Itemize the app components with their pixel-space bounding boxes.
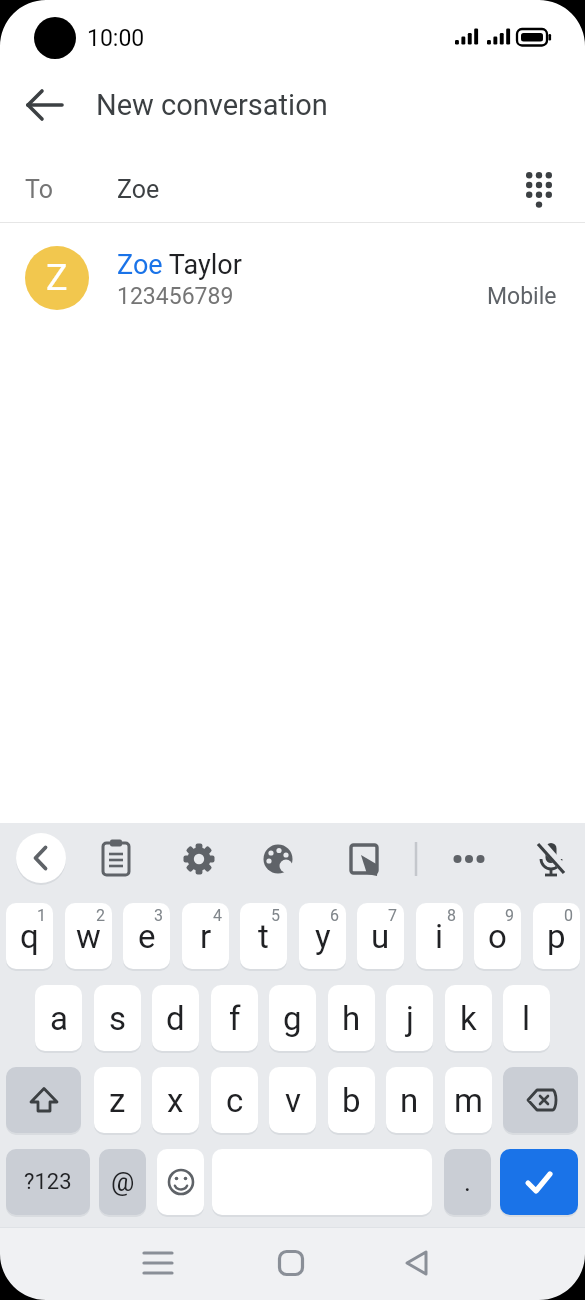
staticText: p xyxy=(547,917,566,956)
button[interactable]: Z xyxy=(0,233,585,323)
staticText: i xyxy=(435,917,444,956)
button[interactable] xyxy=(267,1234,315,1282)
button[interactable]: j xyxy=(386,985,433,1051)
staticText: g xyxy=(283,999,302,1038)
staticText: j xyxy=(406,999,414,1038)
staticText: 4 xyxy=(213,906,222,925)
button[interactable] xyxy=(157,1149,204,1215)
button[interactable] xyxy=(531,839,571,879)
staticText: 1 xyxy=(37,906,46,925)
staticText: t xyxy=(258,917,269,956)
button[interactable]: g xyxy=(269,985,316,1051)
button[interactable] xyxy=(96,839,136,879)
staticText: New conversation xyxy=(96,88,328,122)
staticText: z xyxy=(109,1081,126,1120)
staticText: l xyxy=(522,999,531,1038)
staticText: 7 xyxy=(388,906,397,925)
button[interactable]: l xyxy=(503,985,550,1051)
button[interactable]: o xyxy=(474,903,521,969)
staticText: o xyxy=(488,917,507,956)
staticText: 9 xyxy=(505,906,514,925)
staticText: h xyxy=(342,999,361,1038)
button[interactable]: u xyxy=(357,903,404,969)
staticText: 10:00 xyxy=(87,25,145,52)
button[interactable] xyxy=(500,1149,578,1215)
staticText: f xyxy=(229,999,241,1038)
button[interactable]: c xyxy=(211,1067,258,1133)
staticText: Zoe xyxy=(117,175,160,204)
staticText: 6 xyxy=(330,906,339,925)
staticText: x xyxy=(167,1081,184,1120)
button[interactable] xyxy=(449,839,489,879)
button[interactable]: n xyxy=(386,1067,433,1133)
staticText: 123456789 xyxy=(117,283,234,310)
staticText: y xyxy=(315,917,331,956)
staticText: 5 xyxy=(271,906,280,925)
staticText: To xyxy=(25,175,53,204)
staticText: 8 xyxy=(447,906,456,925)
staticText: n xyxy=(400,1081,419,1120)
staticText: c xyxy=(226,1081,244,1120)
button[interactable]: p xyxy=(533,903,580,969)
button[interactable]: a xyxy=(35,985,82,1051)
button[interactable]: t xyxy=(240,903,287,969)
button[interactable] xyxy=(16,833,66,883)
button[interactable]: k xyxy=(445,985,492,1051)
button[interactable] xyxy=(396,1234,444,1282)
button[interactable]: ?123 xyxy=(6,1149,90,1215)
button[interactable]: d xyxy=(152,985,199,1051)
button[interactable]: b xyxy=(328,1067,375,1133)
staticText: q xyxy=(20,917,39,956)
staticText: w xyxy=(76,917,101,956)
staticText: 0 xyxy=(564,906,573,925)
button[interactable]: r xyxy=(182,903,229,969)
staticText: 2 xyxy=(96,906,105,925)
button[interactable] xyxy=(22,81,70,129)
staticText: 3 xyxy=(154,906,163,925)
staticText: . xyxy=(464,1167,471,1197)
staticText: e xyxy=(138,917,156,956)
button[interactable]: h xyxy=(328,985,375,1051)
button[interactable] xyxy=(258,839,298,879)
staticText: r xyxy=(200,917,212,956)
button[interactable]: To xyxy=(0,155,585,223)
staticText: Mobile xyxy=(487,283,557,310)
staticText: a xyxy=(50,999,68,1038)
button[interactable]: f xyxy=(211,985,258,1051)
button[interactable]: s xyxy=(94,985,141,1051)
button[interactable]: m xyxy=(445,1067,492,1133)
button[interactable]: . xyxy=(444,1149,491,1215)
button[interactable]: x xyxy=(152,1067,199,1133)
button[interactable] xyxy=(345,839,385,879)
button[interactable]: y xyxy=(299,903,346,969)
staticText: s xyxy=(109,999,127,1038)
button[interactable]: w xyxy=(65,903,112,969)
button[interactable]: @ xyxy=(99,1149,146,1215)
button[interactable] xyxy=(515,161,563,209)
button[interactable] xyxy=(131,1234,179,1282)
staticText: ?123 xyxy=(24,1169,72,1195)
button[interactable]: e xyxy=(123,903,170,969)
button[interactable] xyxy=(6,1067,81,1133)
button[interactable]: q xyxy=(6,903,53,969)
staticText: m xyxy=(454,1081,483,1120)
staticText: Z xyxy=(46,257,68,299)
staticText: k xyxy=(460,999,477,1038)
button[interactable]: z xyxy=(94,1067,141,1133)
staticText: Zoe Taylor xyxy=(117,249,242,281)
button[interactable] xyxy=(179,839,219,879)
staticText: @ xyxy=(111,1167,135,1197)
staticText: u xyxy=(371,917,390,956)
button[interactable]: v xyxy=(269,1067,316,1133)
button[interactable]: i xyxy=(416,903,463,969)
staticText: d xyxy=(166,999,185,1038)
staticText: v xyxy=(285,1081,301,1120)
staticText: b xyxy=(342,1081,361,1120)
button[interactable] xyxy=(503,1067,578,1133)
